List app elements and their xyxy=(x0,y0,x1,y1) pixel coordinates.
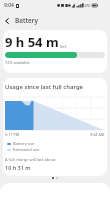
staticText: 72% available xyxy=(5,60,30,65)
button[interactable]: Back xyxy=(0,14,13,27)
staticText: Estimated use xyxy=(13,147,40,152)
staticText: 9:04 AM xyxy=(90,132,105,137)
staticText: left xyxy=(60,44,67,49)
staticText: 10 h 31 m xyxy=(5,164,31,171)
staticText: 9:04 xyxy=(4,2,14,9)
staticText: 72% xyxy=(82,3,91,9)
staticText: 9 h 54 m xyxy=(5,33,59,51)
staticText: 5:17 PM xyxy=(5,132,20,137)
staticText: Usage since last full charge xyxy=(5,83,84,91)
staticText: Battery use xyxy=(13,141,35,146)
staticText: A full charge will last about xyxy=(5,157,56,162)
staticText: Battery xyxy=(15,16,38,25)
